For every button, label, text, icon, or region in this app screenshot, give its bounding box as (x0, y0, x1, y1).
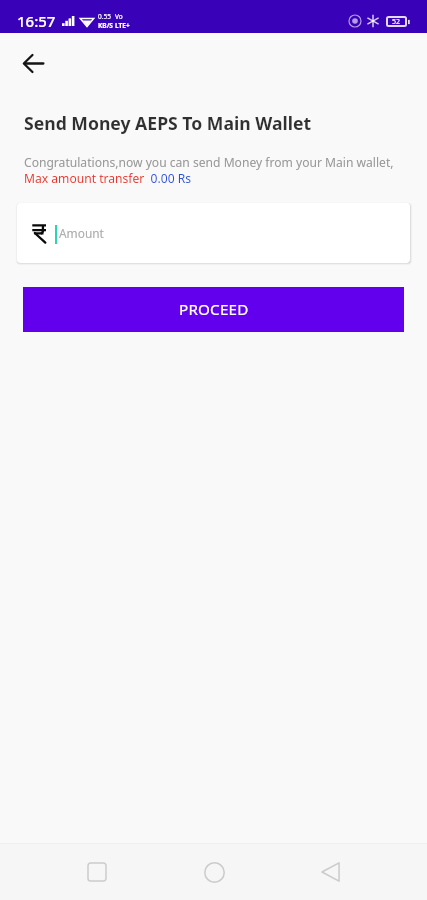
staticText: Amount (59, 225, 104, 241)
staticText: 52 (392, 17, 401, 27)
staticText: Max amount transfer 0.00 Rs (24, 170, 192, 186)
staticText: LTE+ (115, 21, 130, 30)
staticText: PROCEED (179, 299, 249, 320)
button[interactable]: Recents (74, 849, 120, 895)
staticText: KB/S (98, 21, 113, 30)
button[interactable]: Back (307, 849, 353, 895)
staticText: 16:57 (17, 11, 56, 31)
button[interactable]: Amount (17, 203, 410, 263)
button[interactable]: PROCEED (23, 287, 404, 332)
button[interactable]: Back (13, 43, 54, 84)
button[interactable]: Home (191, 849, 237, 895)
staticText: Vo (115, 12, 123, 21)
staticText: Send Money AEPS To Main Wallet (24, 111, 312, 135)
staticText: 0.55 (98, 12, 111, 21)
staticText: Congratulations,now you can send Money f… (24, 154, 394, 170)
